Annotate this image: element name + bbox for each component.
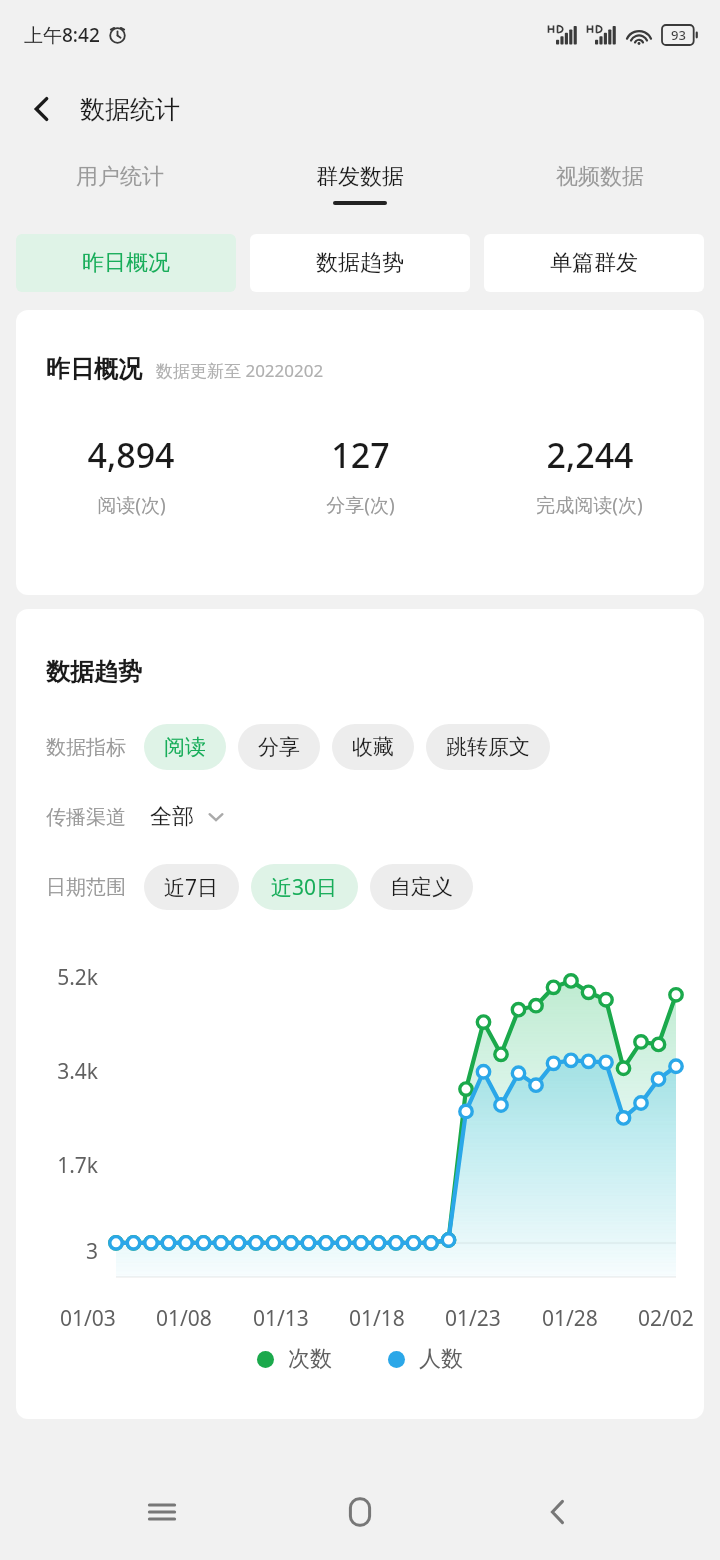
button[interactable]: 全部 bbox=[150, 803, 226, 831]
button[interactable]: 近30日 bbox=[251, 864, 358, 910]
staticText: 3.4k bbox=[57, 1057, 98, 1086]
staticText: 视频数据 bbox=[556, 163, 644, 191]
staticText: 01/13 bbox=[253, 1304, 309, 1333]
button[interactable]: Recent apps bbox=[126, 1476, 198, 1548]
staticText: 阅读 bbox=[164, 734, 206, 760]
staticText: 127 bbox=[331, 432, 390, 478]
staticText: 用户统计 bbox=[76, 163, 164, 191]
staticText: 01/28 bbox=[542, 1304, 598, 1333]
staticText: 传播渠道 bbox=[46, 805, 126, 830]
staticText: 全部 bbox=[150, 803, 194, 831]
button[interactable]: 收藏 bbox=[332, 724, 414, 770]
staticText: 分享 bbox=[258, 734, 300, 760]
staticText: 01/18 bbox=[349, 1304, 405, 1333]
button[interactable]: 阅读 bbox=[144, 724, 226, 770]
staticText: 单篇群发 bbox=[550, 249, 638, 277]
staticText: 跳转原文 bbox=[446, 734, 530, 760]
button[interactable]: 昨日概况 bbox=[16, 234, 236, 292]
button[interactable]: 2,244 bbox=[475, 432, 704, 518]
staticText: 01/08 bbox=[156, 1304, 212, 1333]
staticText: 昨日概况 bbox=[82, 249, 170, 277]
staticText: 近7日 bbox=[164, 873, 219, 902]
staticText: 数据趋势 bbox=[46, 657, 142, 687]
button[interactable]: 自定义 bbox=[370, 864, 473, 910]
button[interactable]: 数据趋势 bbox=[250, 234, 470, 292]
staticText: 阅读(次) bbox=[97, 492, 166, 518]
button[interactable]: 群发数据 bbox=[240, 148, 480, 220]
staticText: 分享(次) bbox=[326, 492, 395, 518]
button[interactable]: 跳转原文 bbox=[426, 724, 550, 770]
button[interactable]: 用户统计 bbox=[0, 148, 240, 220]
staticText: 次数 bbox=[288, 1345, 332, 1373]
staticText: 上午8:42 bbox=[24, 22, 100, 48]
staticText: 人数 bbox=[419, 1345, 463, 1373]
staticText: 3 bbox=[85, 1237, 98, 1266]
staticText: 2,244 bbox=[546, 432, 634, 478]
staticText: 4,894 bbox=[87, 432, 175, 478]
staticText: 数据趋势 bbox=[316, 249, 404, 277]
staticText: 02/02 bbox=[638, 1304, 694, 1333]
button[interactable]: 127 bbox=[246, 432, 475, 518]
staticText: 日期范围 bbox=[46, 875, 126, 900]
button[interactable]: Back bbox=[522, 1476, 594, 1548]
staticText: 完成阅读(次) bbox=[536, 492, 643, 518]
button[interactable]: 单篇群发 bbox=[484, 234, 704, 292]
staticText: 昨日概况 bbox=[46, 354, 142, 384]
staticText: 数据指标 bbox=[46, 735, 126, 760]
staticText: 数据更新至 20220202 bbox=[156, 359, 324, 382]
staticText: 群发数据 bbox=[316, 163, 404, 191]
staticText: 数据统计 bbox=[80, 94, 180, 125]
staticText: 01/03 bbox=[60, 1304, 116, 1333]
staticText: 1.7k bbox=[57, 1151, 98, 1180]
button[interactable]: 近7日 bbox=[144, 864, 239, 910]
button[interactable]: 分享 bbox=[238, 724, 320, 770]
button[interactable]: Home bbox=[324, 1476, 396, 1548]
staticText: 收藏 bbox=[352, 734, 394, 760]
button[interactable]: 人数 bbox=[388, 1345, 463, 1373]
staticText: 自定义 bbox=[390, 874, 453, 900]
button[interactable]: 次数 bbox=[257, 1345, 332, 1373]
button[interactable]: 视频数据 bbox=[480, 148, 720, 220]
button[interactable]: 4,894 bbox=[16, 432, 246, 518]
staticText: 5.2k bbox=[57, 963, 98, 992]
staticText: 93 bbox=[671, 26, 686, 44]
staticText: 近30日 bbox=[271, 873, 338, 902]
button[interactable]: Back bbox=[16, 83, 68, 135]
staticText: 01/23 bbox=[445, 1304, 501, 1333]
